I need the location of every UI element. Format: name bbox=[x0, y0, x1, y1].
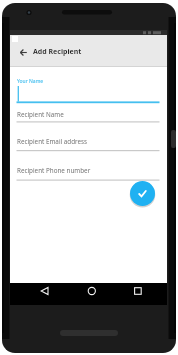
staticText: Add Recipient bbox=[33, 47, 82, 57]
button[interactable]: Recipient Email address bbox=[17, 137, 88, 146]
button[interactable]: Recipient Name bbox=[17, 110, 64, 119]
button[interactable] bbox=[130, 181, 155, 206]
staticText: Your Name bbox=[17, 78, 44, 85]
button[interactable]: Recipient Phone number bbox=[17, 166, 91, 175]
button[interactable] bbox=[16, 45, 30, 59]
